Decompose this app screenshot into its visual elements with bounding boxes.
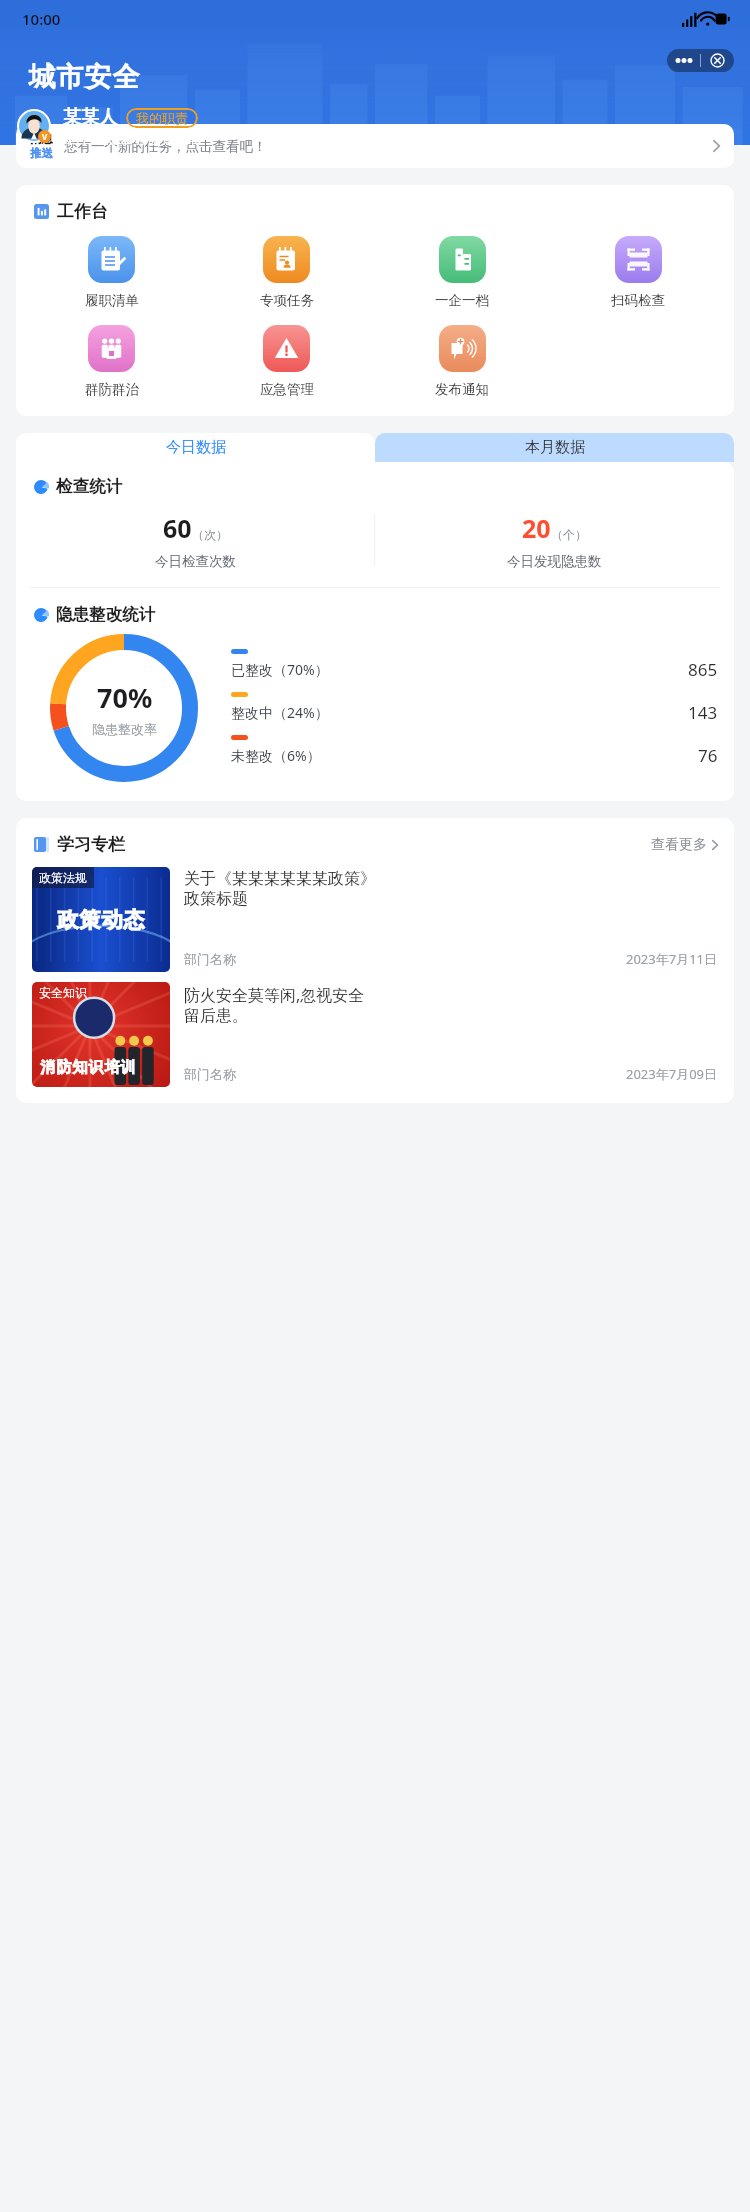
button[interactable]: 查看更多 xyxy=(651,836,718,854)
staticText: 已整改（70%） xyxy=(231,660,329,679)
staticText: 您有一个新的任务，点击查看吧！ xyxy=(64,138,267,155)
staticText: 一企一档 xyxy=(435,292,489,309)
staticText: 关于《某某某某某某政策》 xyxy=(184,869,376,889)
staticText: 隐患整改统计 xyxy=(56,604,155,625)
button[interactable]: 本月数据 xyxy=(375,433,734,462)
staticText: 今日数据 xyxy=(166,438,226,457)
staticText: 76 xyxy=(698,744,718,767)
staticText: 143 xyxy=(688,701,718,724)
staticText: 865 xyxy=(688,658,718,681)
button[interactable]: 今日数据 xyxy=(16,433,375,462)
staticText: 隐患整改率 xyxy=(92,721,157,737)
staticText: （次） xyxy=(192,527,228,542)
staticText: 发布通知 xyxy=(435,381,489,398)
button[interactable]: 一企一档 xyxy=(374,236,550,309)
staticText: （个） xyxy=(551,527,587,542)
button[interactable]: 履职清单 xyxy=(24,236,199,309)
staticText: 某某区应急管理局局长 xyxy=(63,134,203,145)
staticText: 留后患。 xyxy=(184,1006,248,1026)
staticText: 检查统计 xyxy=(56,476,122,497)
staticText: 消息 xyxy=(30,132,53,146)
button[interactable]: 发布通知 xyxy=(374,325,550,398)
staticText: 政策法规 xyxy=(39,870,87,885)
staticText: 2023年7月11日 xyxy=(626,950,718,968)
staticText: 城市安全 xyxy=(28,60,140,94)
staticText: 20 xyxy=(522,511,551,545)
staticText: 某某人 xyxy=(63,106,117,129)
staticText: 扫码检查 xyxy=(611,292,665,309)
button[interactable]: 我的职责 xyxy=(126,108,198,128)
staticText: 2023年7月09日 xyxy=(626,1065,718,1083)
button[interactable]: 群防群治 xyxy=(24,325,199,398)
staticText: 学习专栏 xyxy=(57,834,125,855)
staticText: 应急管理 xyxy=(260,381,314,398)
staticText: 安全知识 xyxy=(39,985,87,1000)
staticText: 未整改（6%） xyxy=(231,746,321,765)
staticText: 70% xyxy=(97,679,153,716)
staticText: 专项任务 xyxy=(260,292,314,309)
button[interactable]: 政策法规 xyxy=(32,867,718,972)
staticText: 履职清单 xyxy=(85,292,139,309)
button[interactable]: Close xyxy=(701,49,734,72)
staticText: 政策动态 xyxy=(57,907,145,933)
staticText: 部门名称 xyxy=(184,1066,236,1082)
button[interactable]: 安全知识 xyxy=(32,982,718,1087)
staticText: 本月数据 xyxy=(525,438,585,457)
staticText: 政策标题 xyxy=(184,889,248,909)
button[interactable]: 消息 xyxy=(16,124,734,168)
staticText: 消防知识培训 xyxy=(40,1058,136,1077)
staticText: 今日检查次数 xyxy=(155,553,236,570)
staticText: V xyxy=(42,131,48,142)
staticText: 查看更多 xyxy=(651,836,707,854)
staticText: 防火安全莫等闲,忽视安全 xyxy=(184,984,365,1006)
staticText: 工作台 xyxy=(57,201,108,222)
button[interactable]: 应急管理 xyxy=(199,325,374,398)
button[interactable]: More options xyxy=(667,49,700,72)
staticText: 我的职责 xyxy=(136,110,188,126)
button[interactable]: 专项任务 xyxy=(199,236,374,309)
staticText: 部门名称 xyxy=(184,951,236,967)
staticText: 群防群治 xyxy=(85,381,139,398)
staticText: 60 xyxy=(163,511,192,545)
staticText: 10:00 xyxy=(22,9,61,29)
staticText: 推送 xyxy=(30,146,53,160)
button[interactable]: V xyxy=(17,106,203,145)
staticText: 整改中（24%） xyxy=(231,703,329,722)
staticText: 今日发现隐患数 xyxy=(507,553,602,570)
button[interactable]: 扫码检查 xyxy=(550,236,726,309)
